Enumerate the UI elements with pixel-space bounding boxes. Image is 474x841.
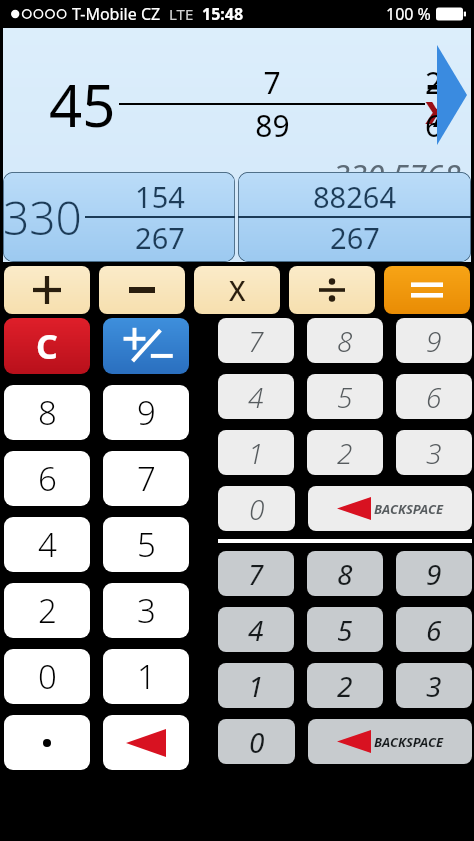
staticText: 154 <box>135 177 185 216</box>
staticText: C <box>36 323 58 369</box>
button[interactable]: 0 <box>218 719 295 764</box>
button[interactable]: 0 <box>4 649 90 704</box>
staticText: 1 <box>248 667 264 705</box>
button[interactable]: 9 <box>396 318 472 363</box>
staticText: LTE <box>169 4 194 24</box>
button[interactable]: equals <box>384 266 470 314</box>
staticText: BACKSPACE <box>374 733 444 751</box>
button[interactable]: multiply <box>194 266 280 314</box>
staticText: 3 <box>137 588 156 633</box>
button[interactable]: Backspace <box>308 486 472 531</box>
button[interactable]: 1 <box>218 430 294 475</box>
button[interactable]: plus <box>4 266 90 314</box>
staticText: 330 <box>3 186 82 249</box>
button[interactable]: 8 <box>4 385 90 440</box>
staticText: 267 <box>135 218 185 257</box>
staticText: 2 <box>337 434 353 472</box>
staticText: 5 <box>137 522 156 567</box>
button[interactable]: 6 <box>396 374 472 419</box>
staticText: 89 <box>255 105 290 146</box>
staticText: 6 <box>426 611 442 649</box>
button[interactable]: 5 <box>307 607 383 652</box>
button[interactable]: divide <box>289 266 375 314</box>
staticText: 6 <box>38 456 57 501</box>
button[interactable]: 4 <box>218 607 294 652</box>
button[interactable]: 4 <box>4 517 90 572</box>
button[interactable]: 9 <box>396 551 472 596</box>
button[interactable]: 7 <box>218 551 294 596</box>
staticText: 5 <box>337 378 353 416</box>
button[interactable]: 2 <box>307 430 383 475</box>
staticText: 7 <box>248 322 264 360</box>
button[interactable]: 0 <box>218 486 295 531</box>
button[interactable]: 6 <box>4 451 90 506</box>
staticText: 8 <box>337 322 353 360</box>
staticText: 9 <box>426 555 442 593</box>
staticText: 5 <box>337 611 353 649</box>
button[interactable]: 8 <box>307 318 383 363</box>
staticText: 9 <box>137 390 156 435</box>
staticText: T-Mobile CZ <box>72 3 161 25</box>
staticText: 3 <box>426 434 442 472</box>
button[interactable]: 2 <box>307 663 383 708</box>
staticText: 6 <box>426 378 442 416</box>
staticText: 267 <box>330 218 380 257</box>
staticText: X <box>229 272 246 309</box>
staticText: 4 <box>248 378 264 416</box>
button[interactable]: plus minus sign <box>103 318 189 374</box>
staticText: 4 <box>248 611 264 649</box>
staticText: 330.5768 <box>333 154 461 196</box>
button[interactable]: decimal point <box>4 715 90 770</box>
button[interactable]: 7 <box>218 318 294 363</box>
staticText: 2 <box>337 667 353 705</box>
button[interactable]: 3 <box>396 430 472 475</box>
staticText: 1 <box>137 654 156 699</box>
button[interactable]: 5 <box>103 517 189 572</box>
staticText: 8 <box>38 390 57 435</box>
staticText: 0 <box>249 490 265 528</box>
button[interactable]: 5 <box>307 374 383 419</box>
staticText: 1 <box>248 434 264 472</box>
staticText: 45 <box>49 65 116 144</box>
button[interactable]: 2 <box>4 583 90 638</box>
staticText: 0 <box>38 654 57 699</box>
button[interactable]: 330 <box>3 172 235 262</box>
staticText: 3 <box>426 667 442 705</box>
staticText: 88264 <box>313 177 396 216</box>
staticText: 2 <box>38 588 57 633</box>
button[interactable]: 8 <box>307 551 383 596</box>
staticText: 4 <box>38 522 57 567</box>
button[interactable]: 7 <box>103 451 189 506</box>
staticText: 7 <box>248 555 264 593</box>
button[interactable]: 88264 <box>238 172 471 262</box>
button[interactable]: 4 <box>218 374 294 419</box>
button[interactable]: clear <box>4 318 90 374</box>
button[interactable]: 3 <box>396 663 472 708</box>
staticText: 9 <box>426 322 442 360</box>
button[interactable]: 6 <box>396 607 472 652</box>
staticText: 7 <box>137 456 156 501</box>
button[interactable]: 1 <box>218 663 294 708</box>
staticText: 0 <box>249 723 265 761</box>
button[interactable]: minus <box>99 266 185 314</box>
staticText: BACKSPACE <box>374 500 444 518</box>
button[interactable]: 1 <box>103 649 189 704</box>
button[interactable]: Backspace <box>103 715 189 770</box>
staticText: 8 <box>337 555 353 593</box>
staticText: 7 <box>263 62 281 103</box>
button[interactable]: Backspace <box>308 719 472 764</box>
button[interactable]: 9 <box>103 385 189 440</box>
staticText: 100 % <box>386 3 431 25</box>
button[interactable]: 3 <box>103 583 189 638</box>
staticText: 15:48 <box>202 3 244 25</box>
